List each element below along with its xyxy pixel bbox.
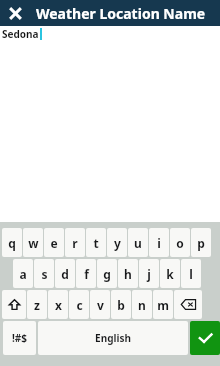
button[interactable]: k [160,259,180,288]
staticText: o [176,235,184,251]
staticText: r [72,235,78,251]
staticText: k [166,266,174,282]
button[interactable]: Backspace [174,290,202,319]
button[interactable]: m [153,290,173,319]
staticText: w [28,235,39,251]
button[interactable]: c [69,290,89,319]
button[interactable]: o [170,228,190,257]
button[interactable]: x [48,290,68,319]
staticText: q [8,235,16,251]
button[interactable]: !#$ [3,321,36,355]
button[interactable]: l [181,259,201,288]
staticText: s [41,266,48,282]
staticText: n [138,297,146,313]
button[interactable]: n [132,290,152,319]
button[interactable]: y [107,228,127,257]
staticText: j [147,266,151,282]
button[interactable]: j [139,259,159,288]
button[interactable]: Sedona [0,26,220,42]
button[interactable]: h [118,259,138,288]
staticText: e [50,235,58,251]
staticText: u [134,235,142,251]
staticText: l [189,266,193,282]
staticText: x [55,297,62,313]
button[interactable]: a [13,259,33,288]
staticText: p [197,235,205,251]
staticText: b [117,297,125,313]
staticText: h [124,266,132,282]
button[interactable]: w [23,228,43,257]
button[interactable]: s [34,259,54,288]
staticText: !#$ [12,331,27,345]
button[interactable]: i [149,228,169,257]
staticText: i [157,235,161,251]
staticText: d [61,266,69,282]
staticText: a [19,266,27,282]
button[interactable]: p [191,228,211,257]
staticText: t [93,235,99,251]
staticText: Sedona [2,27,39,41]
button[interactable]: q [2,228,22,257]
button[interactable]: English [38,321,188,355]
button[interactable]: t [86,228,106,257]
button[interactable]: f [76,259,96,288]
staticText: f [84,266,89,282]
button[interactable]: e [44,228,64,257]
button[interactable]: g [97,259,117,288]
button[interactable]: Done [190,321,220,355]
staticText: Weather Location Name [36,4,206,23]
staticText: v [97,297,104,313]
button[interactable]: r [65,228,85,257]
staticText: y [114,235,121,251]
staticText: z [34,297,40,313]
staticText: m [157,297,169,313]
button[interactable]: b [111,290,131,319]
button[interactable]: v [90,290,110,319]
button[interactable]: Shift [2,290,26,319]
button[interactable]: d [55,259,75,288]
button[interactable]: u [128,228,148,257]
button[interactable]: z [27,290,47,319]
staticText: g [103,266,111,282]
button[interactable]: Close [2,0,28,26]
staticText: English [95,331,131,345]
staticText: c [76,297,83,313]
